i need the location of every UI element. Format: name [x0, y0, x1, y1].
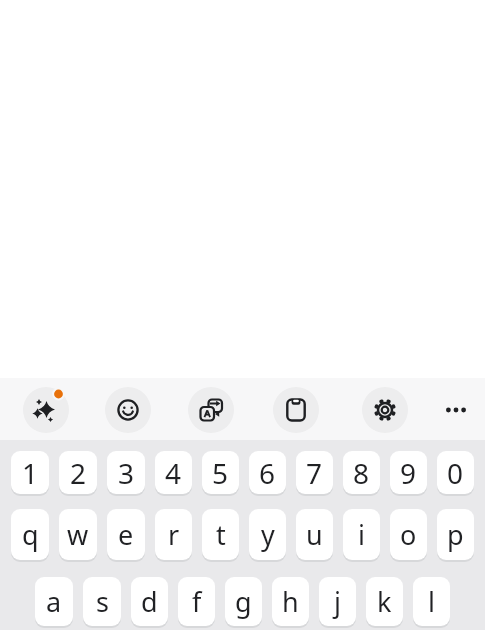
button[interactable]: 1 — [11, 451, 49, 494]
staticText: k — [377, 583, 392, 620]
button[interactable]: s — [83, 577, 121, 626]
button[interactable]: u — [296, 509, 333, 560]
staticText: d — [141, 583, 158, 620]
staticText: t — [216, 516, 226, 553]
button[interactable]: t — [202, 509, 239, 560]
button[interactable]: e — [107, 509, 145, 560]
button[interactable]: 6 — [249, 451, 286, 494]
staticText: 4 — [165, 454, 182, 492]
staticText: a — [46, 583, 62, 620]
staticText: 0 — [447, 454, 464, 492]
staticText: 5 — [212, 454, 229, 492]
button[interactable]: 4 — [155, 451, 192, 494]
staticText: e — [118, 516, 134, 553]
staticText: l — [428, 583, 435, 620]
staticText: 7 — [306, 454, 323, 492]
button[interactable]: i — [343, 509, 380, 560]
staticText: s — [96, 583, 109, 620]
staticText: j — [334, 583, 341, 620]
button[interactable]: 3 — [107, 451, 145, 494]
staticText: 9 — [400, 454, 417, 492]
button[interactable]: o — [390, 509, 427, 560]
button[interactable]: d — [131, 577, 168, 626]
button[interactable]: f — [178, 577, 215, 626]
button[interactable] — [273, 387, 319, 433]
staticText: 1 — [22, 454, 39, 492]
button[interactable]: q — [11, 509, 49, 560]
button[interactable]: r — [155, 509, 192, 560]
button[interactable]: k — [366, 577, 403, 626]
staticText: q — [22, 516, 39, 553]
staticText: h — [282, 583, 299, 620]
button[interactable]: 0 — [437, 451, 474, 494]
button[interactable]: 8 — [343, 451, 380, 494]
button[interactable] — [433, 387, 479, 433]
staticText: y — [261, 516, 275, 553]
staticText: 2 — [70, 454, 87, 492]
button[interactable]: h — [272, 577, 309, 626]
staticText: g — [235, 583, 252, 620]
button[interactable]: 5 — [202, 451, 239, 494]
staticText: o — [400, 516, 417, 553]
staticText: r — [168, 516, 180, 553]
staticText: 3 — [118, 454, 135, 492]
staticText: u — [306, 516, 323, 553]
button[interactable] — [23, 387, 69, 433]
button[interactable]: p — [437, 509, 474, 560]
button[interactable]: l — [413, 577, 450, 626]
button[interactable]: 7 — [296, 451, 333, 494]
button[interactable]: w — [59, 509, 97, 560]
button[interactable] — [188, 387, 234, 433]
button[interactable]: 2 — [59, 451, 97, 494]
button[interactable] — [362, 387, 408, 433]
staticText: 8 — [353, 454, 370, 492]
button[interactable] — [105, 387, 151, 433]
button[interactable]: g — [225, 577, 262, 626]
staticText: w — [67, 516, 89, 553]
staticText: i — [358, 516, 365, 553]
staticText: f — [192, 583, 202, 620]
button[interactable]: 9 — [390, 451, 427, 494]
staticText: p — [447, 516, 464, 553]
button[interactable]: j — [319, 577, 356, 626]
button[interactable]: y — [249, 509, 286, 560]
staticText: 6 — [259, 454, 276, 492]
button[interactable]: a — [35, 577, 73, 626]
